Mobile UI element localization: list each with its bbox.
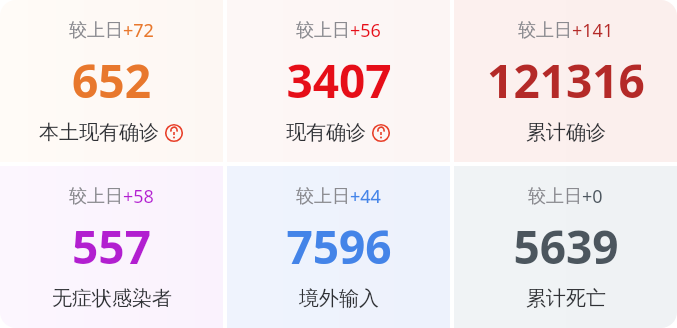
button[interactable]: 较上日 bbox=[454, 166, 677, 328]
staticText: 较上日 bbox=[69, 185, 123, 208]
staticText: 5639 bbox=[513, 215, 619, 278]
staticText: 本土现有确诊 bbox=[39, 120, 159, 145]
staticText: +56 bbox=[350, 18, 381, 43]
staticText: 累计死亡 bbox=[526, 286, 606, 311]
staticText: 较上日 bbox=[296, 185, 350, 208]
staticText: 7596 bbox=[286, 215, 392, 278]
button[interactable]: 较上日 bbox=[0, 166, 223, 328]
button[interactable]: 说明 bbox=[371, 123, 391, 143]
staticText: 现有确诊 bbox=[286, 120, 366, 145]
button[interactable]: 说明 bbox=[164, 123, 184, 143]
staticText: +0 bbox=[582, 184, 603, 209]
button[interactable]: 较上日 bbox=[227, 166, 450, 328]
staticText: 较上日 bbox=[518, 19, 572, 42]
staticText: +58 bbox=[123, 184, 154, 209]
staticText: +72 bbox=[123, 18, 154, 43]
button[interactable]: 较上日 bbox=[454, 0, 677, 162]
staticText: 121316 bbox=[487, 49, 645, 112]
button[interactable]: 较上日 bbox=[0, 0, 223, 162]
staticText: 无症状感染者 bbox=[52, 286, 172, 311]
staticText: 累计确诊 bbox=[526, 120, 606, 145]
staticText: 境外输入 bbox=[299, 286, 379, 311]
staticText: +141 bbox=[572, 18, 614, 43]
staticText: 较上日 bbox=[69, 19, 123, 42]
button[interactable]: 较上日 bbox=[227, 0, 450, 162]
staticText: 较上日 bbox=[296, 19, 350, 42]
staticText: 652 bbox=[72, 49, 151, 112]
staticText: 3407 bbox=[286, 49, 392, 112]
staticText: +44 bbox=[350, 184, 381, 209]
staticText: 较上日 bbox=[528, 185, 582, 208]
staticText: 557 bbox=[72, 215, 151, 278]
